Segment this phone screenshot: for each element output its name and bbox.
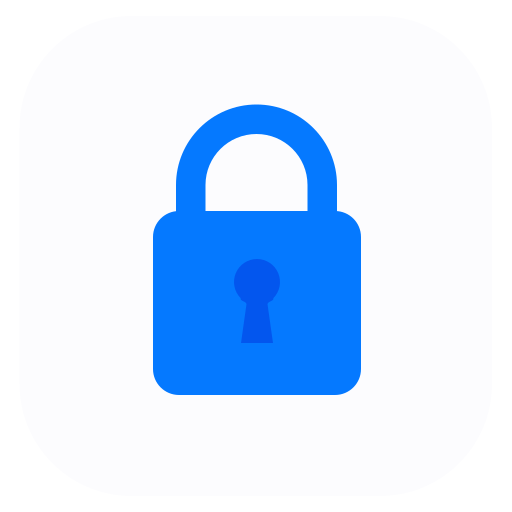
- button[interactable]: Lock: [0, 0, 512, 512]
